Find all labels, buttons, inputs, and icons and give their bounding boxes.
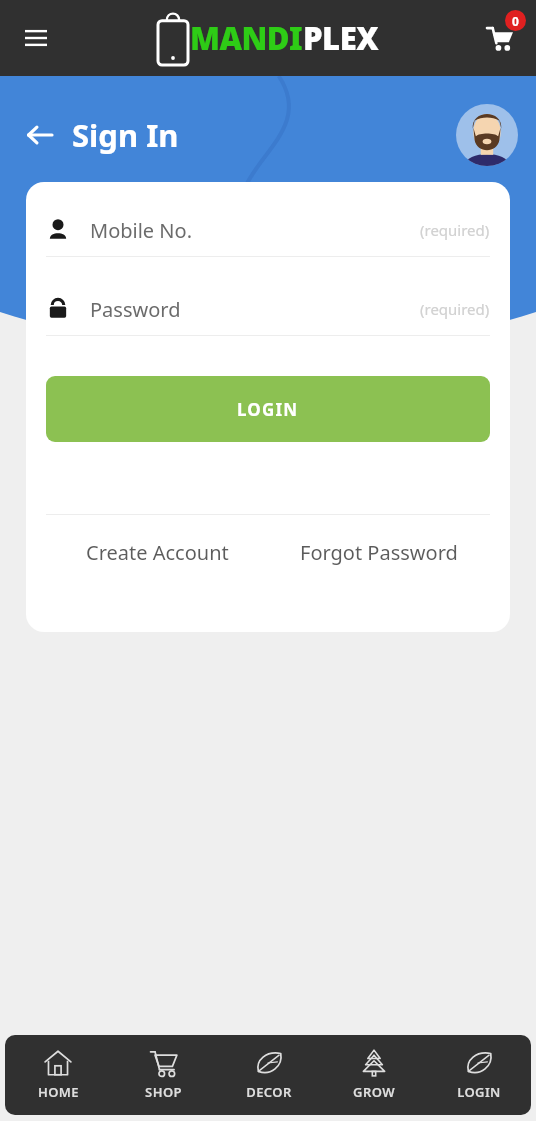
staticText: Sign In [72,114,179,156]
button[interactable]: LOGIN [426,1035,531,1115]
staticText: HOME [38,1083,79,1101]
button[interactable]: Mobile No. [46,204,490,257]
button[interactable]: Forgot Password [268,539,490,566]
button[interactable]: Create Account [46,539,268,566]
button[interactable]: DECOR [216,1035,321,1115]
staticText: PLEX [303,17,379,59]
staticText: LOGIN [457,1083,501,1101]
staticText: Forgot Password [300,539,458,566]
staticText: SHOP [145,1083,182,1101]
button[interactable]: HOME [5,1035,111,1115]
button[interactable]: Menu [16,18,56,58]
staticText: (required) [420,299,490,319]
button[interactable]: Cart [476,14,524,62]
staticText: LOGIN [237,398,299,421]
staticText: GROW [353,1083,395,1101]
button[interactable]: Back [18,114,60,156]
button[interactable]: Password [46,283,490,336]
button[interactable]: Profile [456,104,518,166]
button[interactable]: GROW [321,1035,426,1115]
staticText: MANDI [190,17,303,59]
staticText: 0 [512,13,519,29]
button[interactable]: LOGIN [46,376,490,442]
staticText: DECOR [246,1083,292,1101]
staticText: Mobile No. [90,217,192,244]
staticText: Create Account [86,539,229,566]
staticText: Password [90,296,181,323]
staticText: (required) [420,220,490,240]
button[interactable]: SHOP [111,1035,216,1115]
